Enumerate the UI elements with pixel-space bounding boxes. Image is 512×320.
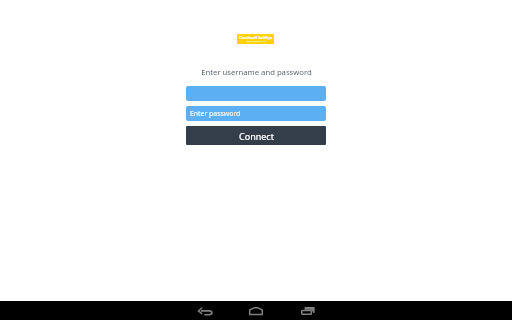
staticText: Enter password — [190, 109, 241, 118]
staticText: SOLUTIONS IN IT — [246, 40, 266, 43]
button[interactable]: Cracknell SoftSys logo — [237, 34, 274, 44]
staticText: Enter username and password — [201, 67, 312, 77]
button[interactable]: Back — [190, 301, 220, 320]
button[interactable]: Home — [241, 301, 271, 320]
button[interactable]: Username field — [186, 86, 326, 101]
staticText: Connect — [239, 130, 274, 142]
button[interactable]: Connect — [186, 126, 326, 145]
button[interactable]: Enter password — [186, 106, 326, 121]
staticText: Cracknell SoftSys — [239, 35, 272, 40]
button[interactable]: Recent apps — [292, 301, 322, 320]
